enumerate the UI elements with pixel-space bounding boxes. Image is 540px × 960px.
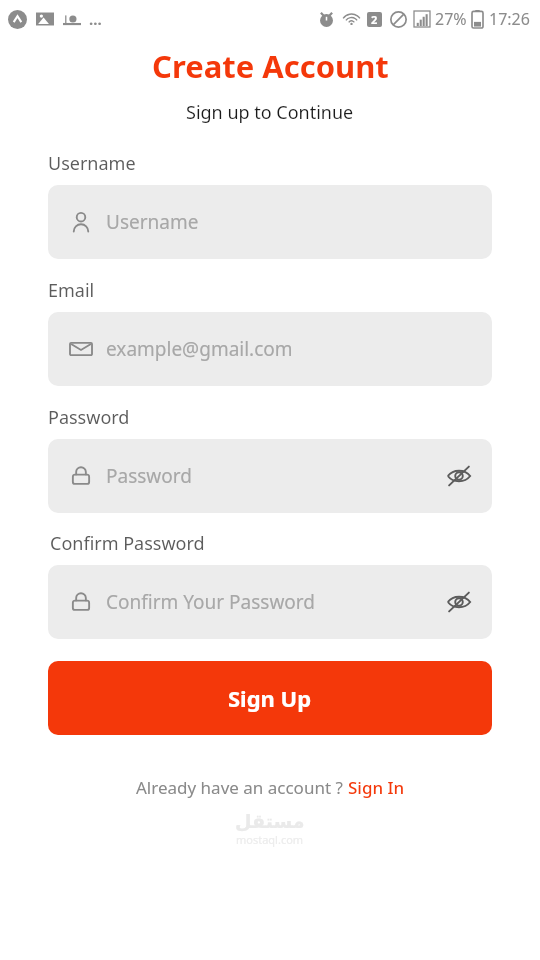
- staticText: Sign In: [348, 776, 405, 799]
- staticText: example@gmail.com: [106, 336, 293, 362]
- staticText: Already have an account ?: [136, 776, 348, 799]
- staticText: Username: [106, 209, 199, 235]
- button[interactable]: Sign In: [348, 776, 405, 799]
- staticText: 17:26: [489, 8, 530, 30]
- staticText: Username: [48, 151, 136, 176]
- staticText: Sign up to Continue: [186, 100, 354, 125]
- staticText: mostaql.com: [236, 832, 304, 847]
- staticText: 2: [371, 12, 378, 27]
- button[interactable]: Show password: [442, 459, 476, 493]
- staticText: Confirm Your Password: [106, 589, 316, 615]
- button[interactable]: example@gmail.com: [48, 312, 492, 386]
- button[interactable]: Username: [48, 185, 492, 259]
- button[interactable]: Password: [48, 439, 492, 513]
- staticText: Email: [48, 278, 95, 303]
- staticText: Password: [106, 463, 192, 489]
- button[interactable]: Sign Up: [48, 661, 492, 735]
- staticText: مستقل: [235, 810, 305, 832]
- button[interactable]: Show password: [442, 585, 476, 619]
- staticText: 27%: [435, 8, 467, 30]
- staticText: ...: [89, 9, 102, 29]
- button[interactable]: Confirm Your Password: [48, 565, 492, 639]
- staticText: Confirm Password: [50, 531, 205, 556]
- staticText: Create Account: [152, 45, 389, 87]
- staticText: Sign Up: [228, 683, 312, 713]
- staticText: Password: [48, 405, 130, 430]
